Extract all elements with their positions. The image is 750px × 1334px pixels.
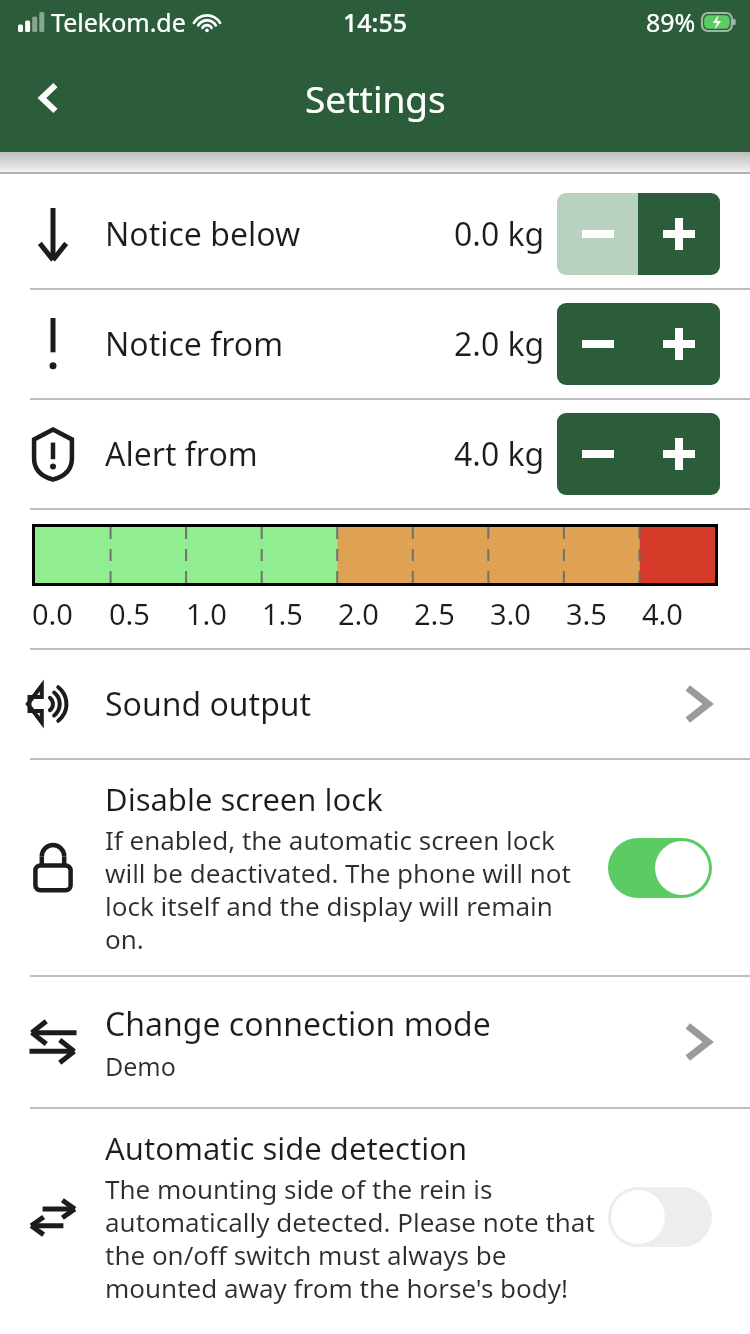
staticText: 2.0 <box>338 594 379 633</box>
button[interactable]: Increase Notice below <box>638 193 720 275</box>
staticText: Change connection mode <box>105 1002 491 1046</box>
staticText: Disable screen lock <box>105 778 383 820</box>
staticText: Telekom.de <box>51 5 186 39</box>
staticText: 0.0 <box>32 594 73 633</box>
staticText: 0.0 kg <box>454 212 545 256</box>
button[interactable]: Notice from <box>0 290 750 398</box>
staticText: 14:55 <box>343 5 408 39</box>
staticText: If enabled, the automatic screen lock wi… <box>105 822 595 957</box>
staticText: The mounting side of the rein is automat… <box>105 1171 595 1306</box>
staticText: Demo <box>105 1049 176 1083</box>
staticText: Automatic side detection <box>105 1127 468 1169</box>
button[interactable]: Increase Notice from <box>638 303 720 385</box>
staticText: 2.5 <box>414 594 455 633</box>
staticText: 89% <box>646 5 696 39</box>
staticText: Alert from <box>105 432 258 476</box>
staticText: Notice from <box>105 322 284 366</box>
staticText: 4.0 kg <box>454 432 545 476</box>
button[interactable]: Disable screen lock <box>608 838 712 898</box>
button[interactable]: Alert from <box>0 400 750 508</box>
button[interactable]: Disable screen lock <box>0 760 750 975</box>
staticText: Sound output <box>105 682 312 726</box>
staticText: Notice below <box>105 212 301 256</box>
button[interactable]: Increase Alert from <box>638 413 720 495</box>
button[interactable]: Decrease Notice from <box>557 303 638 385</box>
staticText: 3.5 <box>566 594 607 633</box>
other: Open <box>682 679 714 729</box>
staticText: 2.0 kg <box>454 322 545 366</box>
button[interactable]: Decrease Alert from <box>557 413 638 495</box>
button[interactable]: Automatic side detection <box>0 1109 750 1324</box>
button[interactable]: Change connection mode <box>0 977 750 1107</box>
staticText: Settings <box>305 73 446 123</box>
button[interactable]: Sound output <box>0 650 750 758</box>
staticText: 0.5 <box>109 594 150 633</box>
staticText: 3.0 <box>490 594 531 633</box>
staticText: 4.0 <box>642 594 683 633</box>
button[interactable]: Automatic side detection <box>608 1187 712 1247</box>
button[interactable]: Notice below <box>0 180 750 288</box>
other: Open <box>682 1017 714 1067</box>
staticText: 1.0 <box>186 594 227 633</box>
staticText: 1.5 <box>262 594 303 633</box>
button[interactable]: Back <box>18 66 82 130</box>
button[interactable]: Decrease Notice below <box>557 193 638 275</box>
